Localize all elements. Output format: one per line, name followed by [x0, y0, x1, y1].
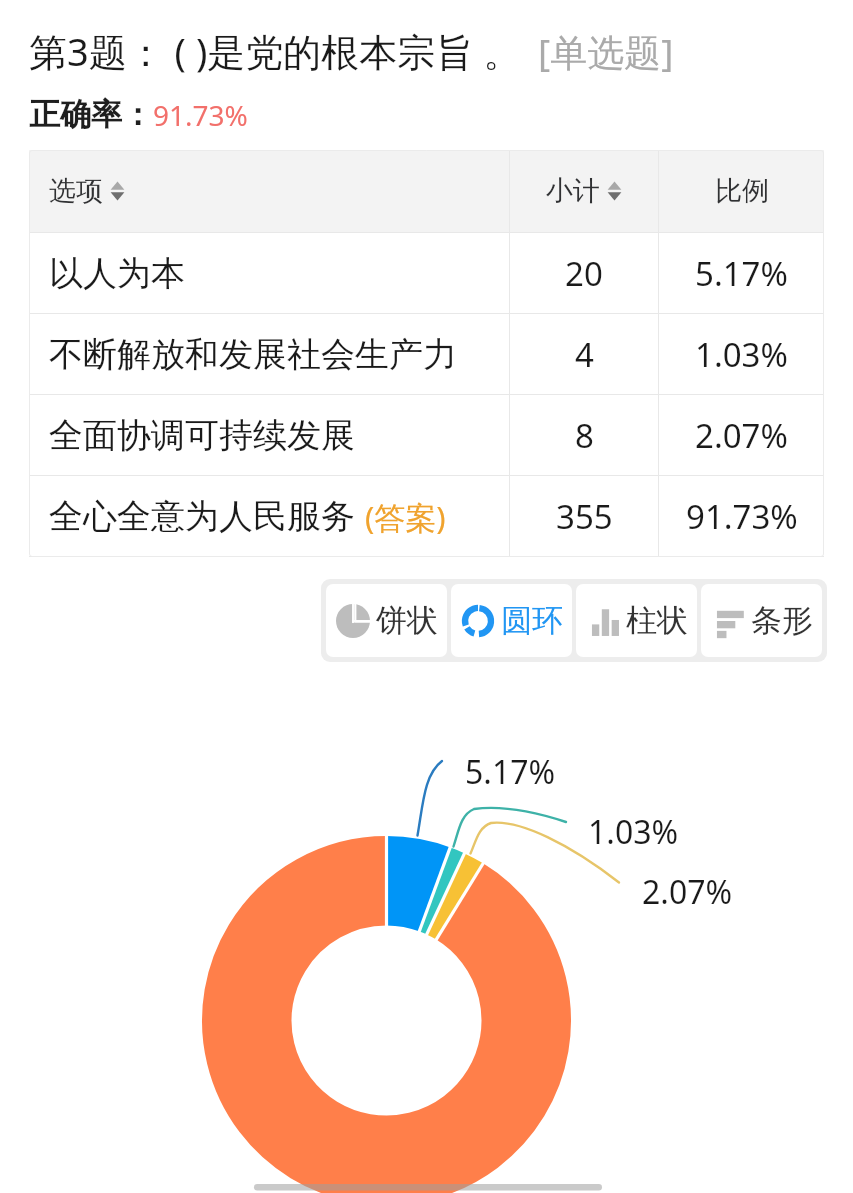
button[interactable]: 条形 — [701, 584, 822, 657]
button[interactable]: 以人为本 — [29, 233, 824, 313]
button[interactable]: 小计 — [510, 150, 658, 232]
button[interactable]: 全心全意为人民服务 — [29, 476, 824, 556]
staticText: (答案) — [365, 496, 446, 538]
staticText: 饼状 — [376, 601, 438, 640]
staticText: 2.07% — [642, 870, 733, 914]
button[interactable]: 柱状 — [576, 584, 697, 657]
staticText: 柱状 — [626, 601, 688, 640]
staticText: 1.03% — [695, 332, 788, 377]
staticText: 第3题： ( )是党的根本宗旨 。 — [29, 25, 522, 77]
button[interactable]: 选项 — [29, 150, 509, 232]
staticText: 正确率： — [29, 95, 153, 134]
button[interactable]: 不断解放和发展社会生产力 — [29, 314, 824, 394]
button[interactable]: 饼状 — [326, 584, 447, 657]
staticText: 2.07% — [695, 413, 788, 458]
staticText: 全面协调可持续发展 — [49, 414, 355, 457]
staticText: 91.73% — [153, 96, 248, 134]
staticText: 条形 — [751, 601, 813, 640]
button[interactable]: 全面协调可持续发展 — [29, 395, 824, 475]
staticText: 小计 — [546, 174, 600, 208]
staticText: 5.17% — [465, 750, 556, 794]
staticText: 355 — [556, 494, 613, 539]
staticText: 全心全意为人民服务 — [49, 495, 355, 538]
staticText: 以人为本 — [49, 252, 185, 295]
staticText: 1.03% — [588, 810, 679, 854]
staticText: 选项 — [49, 174, 103, 208]
staticText: 8 — [575, 413, 594, 458]
staticText: 圆环 — [501, 601, 563, 640]
staticText: [单选题] — [538, 26, 674, 77]
staticText: 4 — [575, 332, 594, 377]
staticText: 不断解放和发展社会生产力 — [49, 333, 457, 376]
staticText: 比例 — [715, 174, 769, 208]
staticText: 91.73% — [686, 494, 798, 539]
staticText: 20 — [565, 251, 603, 296]
staticText: 5.17% — [695, 251, 788, 296]
button[interactable]: 圆环 — [451, 584, 572, 657]
